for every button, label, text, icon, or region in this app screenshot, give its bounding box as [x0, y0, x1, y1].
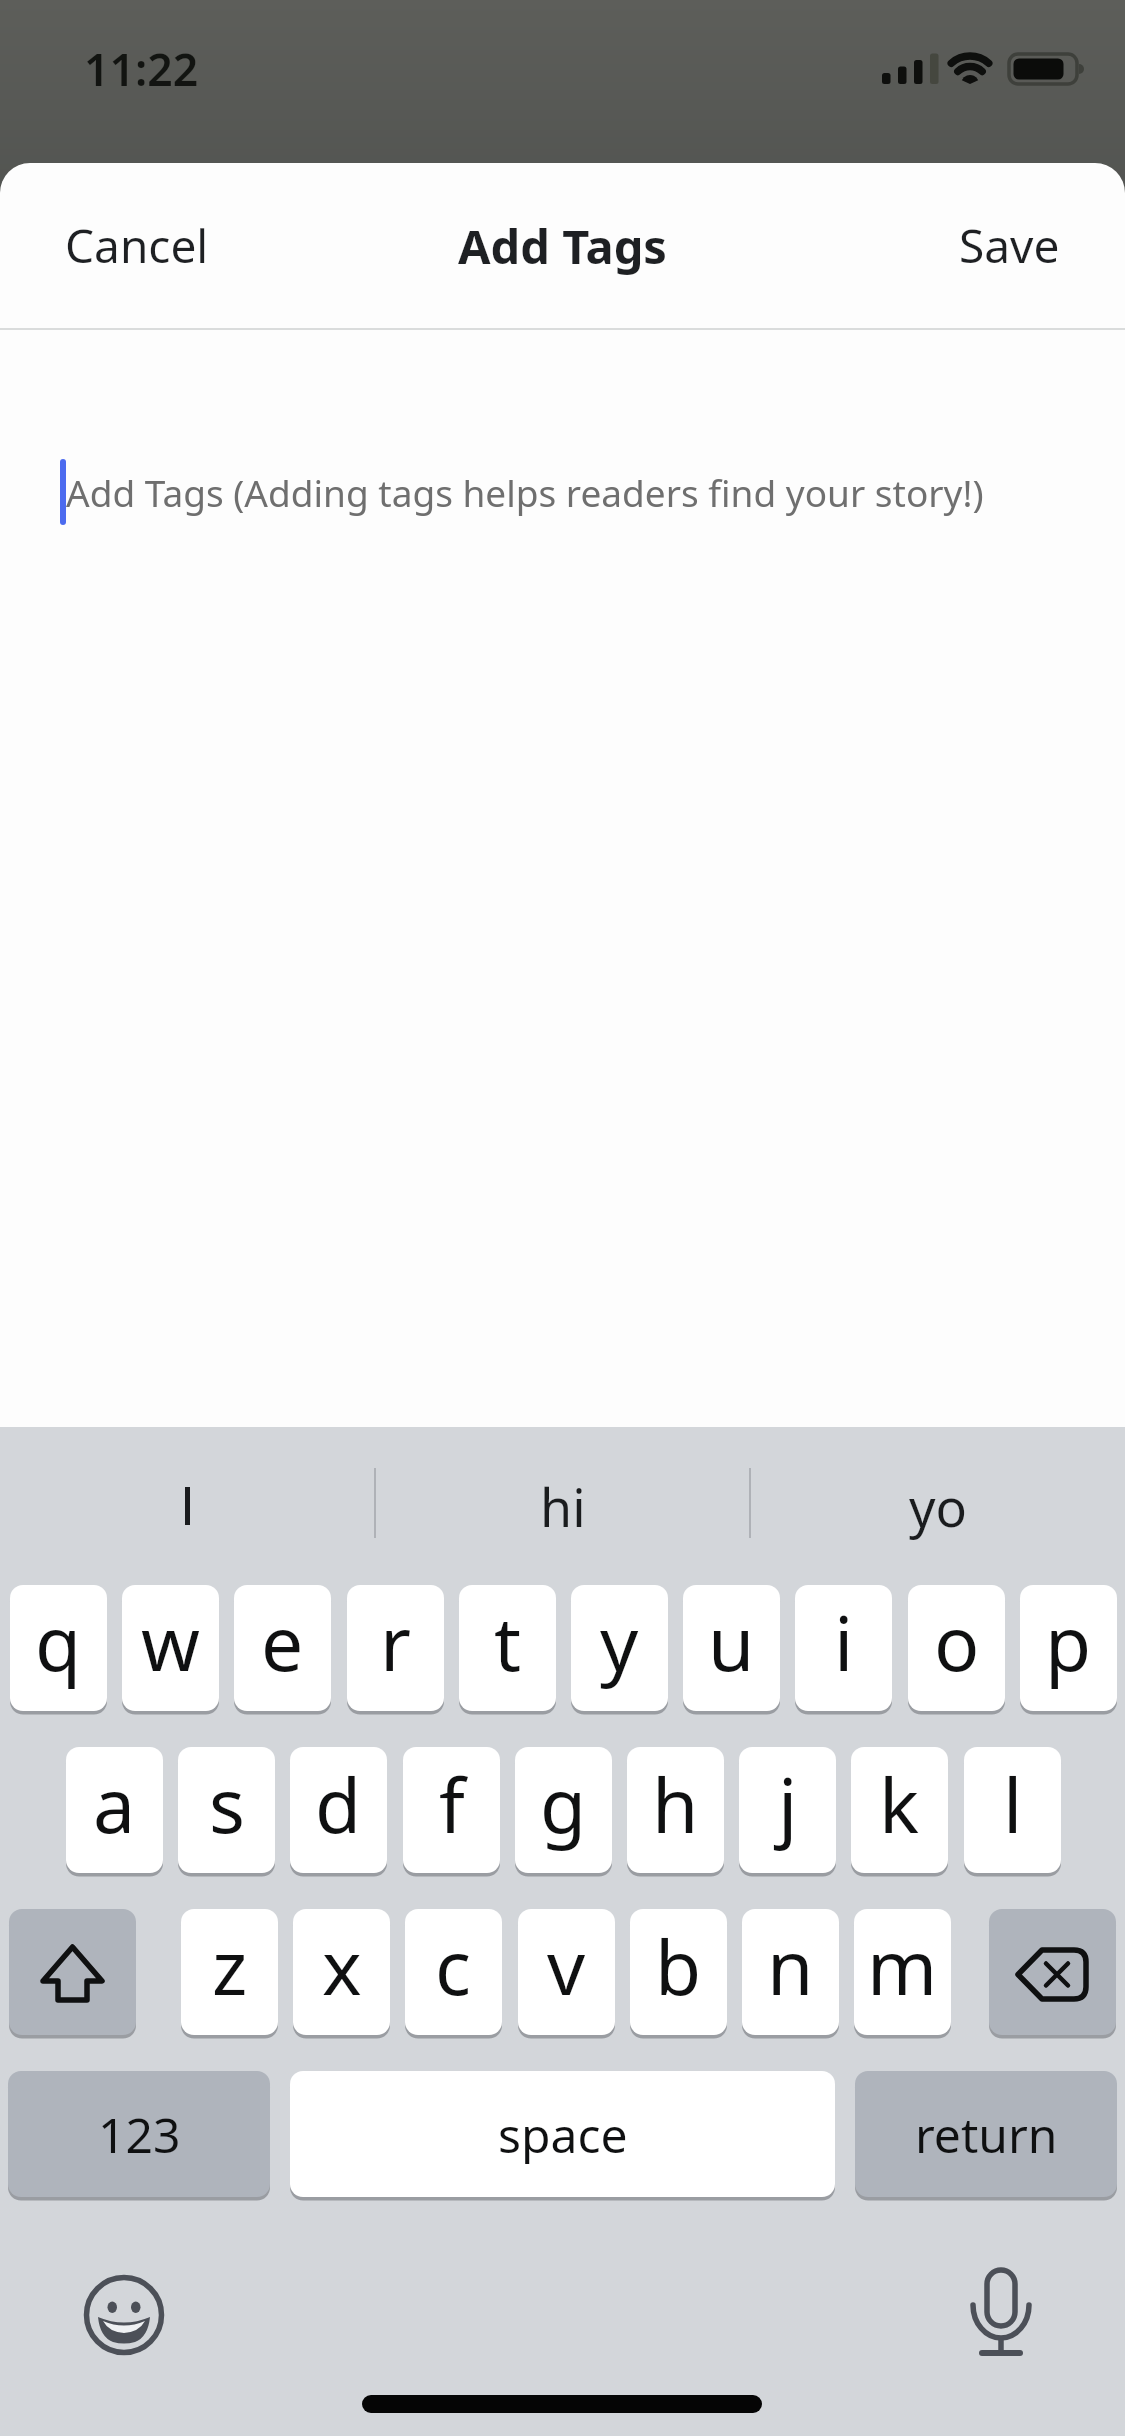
button[interactable]: c [405, 1909, 502, 2035]
button[interactable] [9, 1909, 136, 2035]
staticText: f [439, 1753, 465, 1855]
button[interactable]: b [630, 1909, 727, 2035]
button[interactable]: m [854, 1909, 951, 2035]
button[interactable]: e [234, 1585, 331, 1711]
staticText: space [498, 2102, 628, 2167]
staticText: yo [909, 1471, 967, 1542]
button[interactable]: r [347, 1585, 444, 1711]
staticText: b [655, 1915, 702, 2017]
button[interactable]: k [851, 1747, 948, 1873]
button[interactable]: x [293, 1909, 390, 2035]
staticText: 11:22 [84, 38, 199, 98]
staticText: i [834, 1591, 854, 1693]
button[interactable]: q [10, 1585, 107, 1711]
staticText: j [778, 1753, 798, 1855]
button[interactable]: w [122, 1585, 219, 1711]
button[interactable]: yo [750, 1427, 1125, 1585]
staticText: h [652, 1753, 699, 1855]
staticText: r [380, 1591, 411, 1693]
staticText: m [867, 1915, 938, 2017]
staticText: o [934, 1591, 980, 1693]
staticText: 123 [98, 2102, 181, 2167]
staticText: a [93, 1753, 136, 1855]
button[interactable]: o [908, 1585, 1005, 1711]
button[interactable]: g [515, 1747, 612, 1873]
button[interactable]: h [627, 1747, 724, 1873]
staticText: v [547, 1915, 586, 2017]
staticText: z [212, 1915, 248, 2017]
button[interactable]: return [855, 2071, 1117, 2197]
staticText: Add Tags [458, 214, 667, 278]
staticText: u [708, 1591, 755, 1693]
button[interactable]: a [66, 1747, 163, 1873]
button[interactable]: n [742, 1909, 839, 2035]
staticText: e [261, 1591, 304, 1693]
button[interactable]: 123 [8, 2071, 270, 2197]
button[interactable]: z [181, 1909, 278, 2035]
staticText: d [315, 1753, 362, 1855]
button[interactable]: t [459, 1585, 556, 1711]
button[interactable]: p [1020, 1585, 1117, 1711]
staticText: hi [540, 1471, 586, 1542]
staticText: Save [959, 214, 1060, 277]
staticText: Cancel [65, 214, 209, 277]
button[interactable]: d [290, 1747, 387, 1873]
staticText: Add Tags (Adding tags helps readers find… [66, 467, 984, 517]
staticText: k [879, 1753, 920, 1855]
button[interactable]: l [964, 1747, 1061, 1873]
staticText: n [767, 1915, 814, 2017]
button[interactable]: i [795, 1585, 892, 1711]
staticText: w [141, 1591, 200, 1693]
button[interactable]: j [739, 1747, 836, 1873]
staticText: y [600, 1591, 639, 1693]
button[interactable] [0, 1427, 375, 1585]
button[interactable] [989, 1909, 1116, 2035]
staticText: p [1045, 1591, 1092, 1693]
staticText: q [35, 1591, 82, 1693]
staticText: l [1003, 1753, 1023, 1855]
staticText: c [435, 1915, 472, 2017]
button[interactable]: s [178, 1747, 275, 1873]
staticText: x [322, 1915, 362, 2017]
button[interactable]: Save [934, 163, 1085, 328]
button[interactable]: Cancel [40, 163, 234, 328]
button[interactable]: v [518, 1909, 615, 2035]
button[interactable] [79, 2270, 169, 2360]
button[interactable] [961, 2270, 1041, 2360]
button[interactable]: hi [375, 1427, 750, 1585]
button[interactable]: Add Tags (Adding tags helps readers find… [66, 459, 984, 525]
staticText: t [494, 1591, 522, 1693]
button[interactable]: u [683, 1585, 780, 1711]
staticText: return [915, 2102, 1058, 2167]
button[interactable]: space [290, 2071, 835, 2197]
button[interactable]: y [571, 1585, 668, 1711]
staticText: s [209, 1753, 245, 1855]
button[interactable]: f [403, 1747, 500, 1873]
staticText: g [540, 1753, 587, 1855]
